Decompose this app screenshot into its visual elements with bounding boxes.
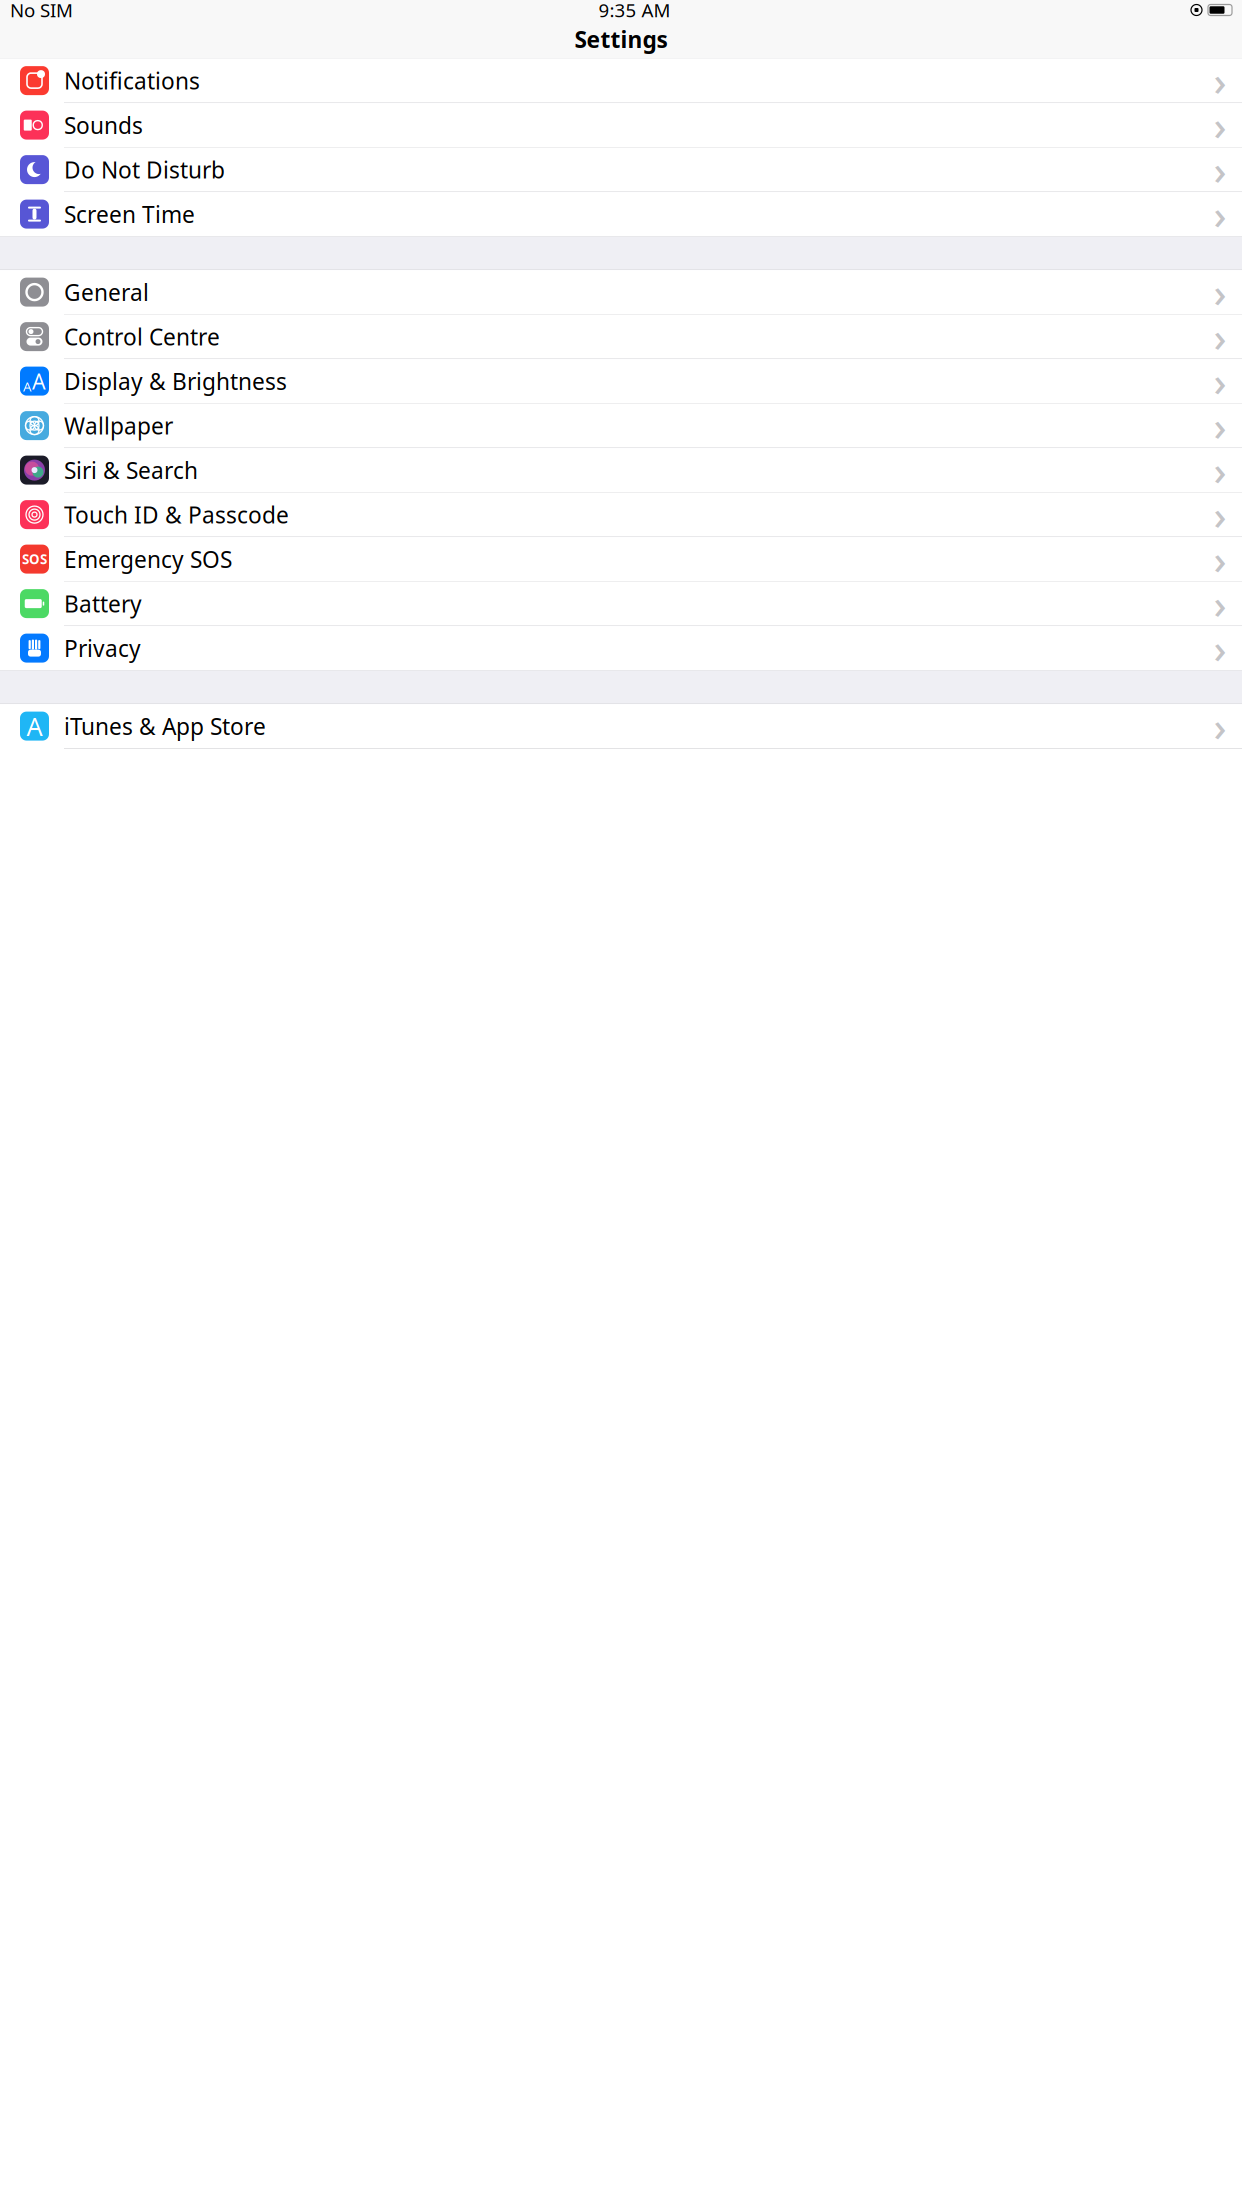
staticText: › bbox=[1213, 577, 1226, 630]
staticText: › bbox=[1213, 532, 1226, 586]
staticText: › bbox=[1213, 354, 1226, 408]
staticText: › bbox=[1213, 54, 1226, 107]
staticText: Notifications bbox=[64, 65, 200, 96]
staticText: A bbox=[26, 709, 42, 743]
staticText: A bbox=[32, 367, 46, 395]
button[interactable]: Privacy bbox=[0, 626, 1242, 670]
staticText: › bbox=[1213, 621, 1226, 675]
staticText: Display & Brightness bbox=[64, 366, 287, 396]
staticText: Battery bbox=[64, 588, 142, 619]
button[interactable]: Screen Time bbox=[0, 192, 1242, 236]
button[interactable]: Wallpaper bbox=[0, 404, 1242, 448]
button[interactable]: A bbox=[0, 359, 1242, 404]
button[interactable]: Do Not Disturb bbox=[0, 148, 1242, 192]
staticText: iTunes & App Store bbox=[64, 711, 266, 741]
staticText: › bbox=[1213, 98, 1226, 152]
staticText: › bbox=[1213, 187, 1226, 241]
staticText: 9:35 AM bbox=[598, 0, 670, 22]
staticText: Do Not Disturb bbox=[64, 154, 225, 185]
button[interactable]: Siri & Search bbox=[0, 448, 1242, 493]
staticText: Screen Time bbox=[64, 199, 195, 229]
staticText: Sounds bbox=[64, 110, 143, 140]
staticText: Privacy bbox=[64, 633, 141, 663]
staticText: › bbox=[1213, 699, 1226, 753]
staticText: › bbox=[1213, 143, 1226, 196]
staticText: SOS bbox=[22, 550, 47, 568]
button[interactable]: A bbox=[0, 704, 1242, 749]
staticText: Touch ID & Passcode bbox=[64, 499, 289, 530]
button[interactable]: General bbox=[0, 270, 1242, 315]
staticText: › bbox=[1213, 399, 1226, 452]
staticText: No SIM bbox=[10, 0, 73, 22]
button[interactable]: Sounds bbox=[0, 103, 1242, 148]
staticText: › bbox=[1213, 310, 1226, 363]
staticText: Settings bbox=[574, 24, 667, 54]
staticText: Emergency SOS bbox=[64, 544, 232, 574]
staticText: Control Centre bbox=[64, 321, 220, 352]
staticText: Wallpaper bbox=[64, 410, 173, 441]
staticText: A bbox=[23, 378, 32, 395]
staticText: General bbox=[64, 277, 149, 307]
button[interactable]: Battery bbox=[0, 582, 1242, 626]
staticText: › bbox=[1213, 265, 1226, 319]
button[interactable]: Touch ID & Passcode bbox=[0, 493, 1242, 537]
staticText: › bbox=[1213, 488, 1226, 541]
staticText: › bbox=[1213, 443, 1226, 497]
button[interactable]: SOS bbox=[0, 537, 1242, 582]
button[interactable]: Notifications bbox=[0, 59, 1242, 103]
button[interactable]: Control Centre bbox=[0, 315, 1242, 359]
staticText: Siri & Search bbox=[64, 455, 198, 485]
